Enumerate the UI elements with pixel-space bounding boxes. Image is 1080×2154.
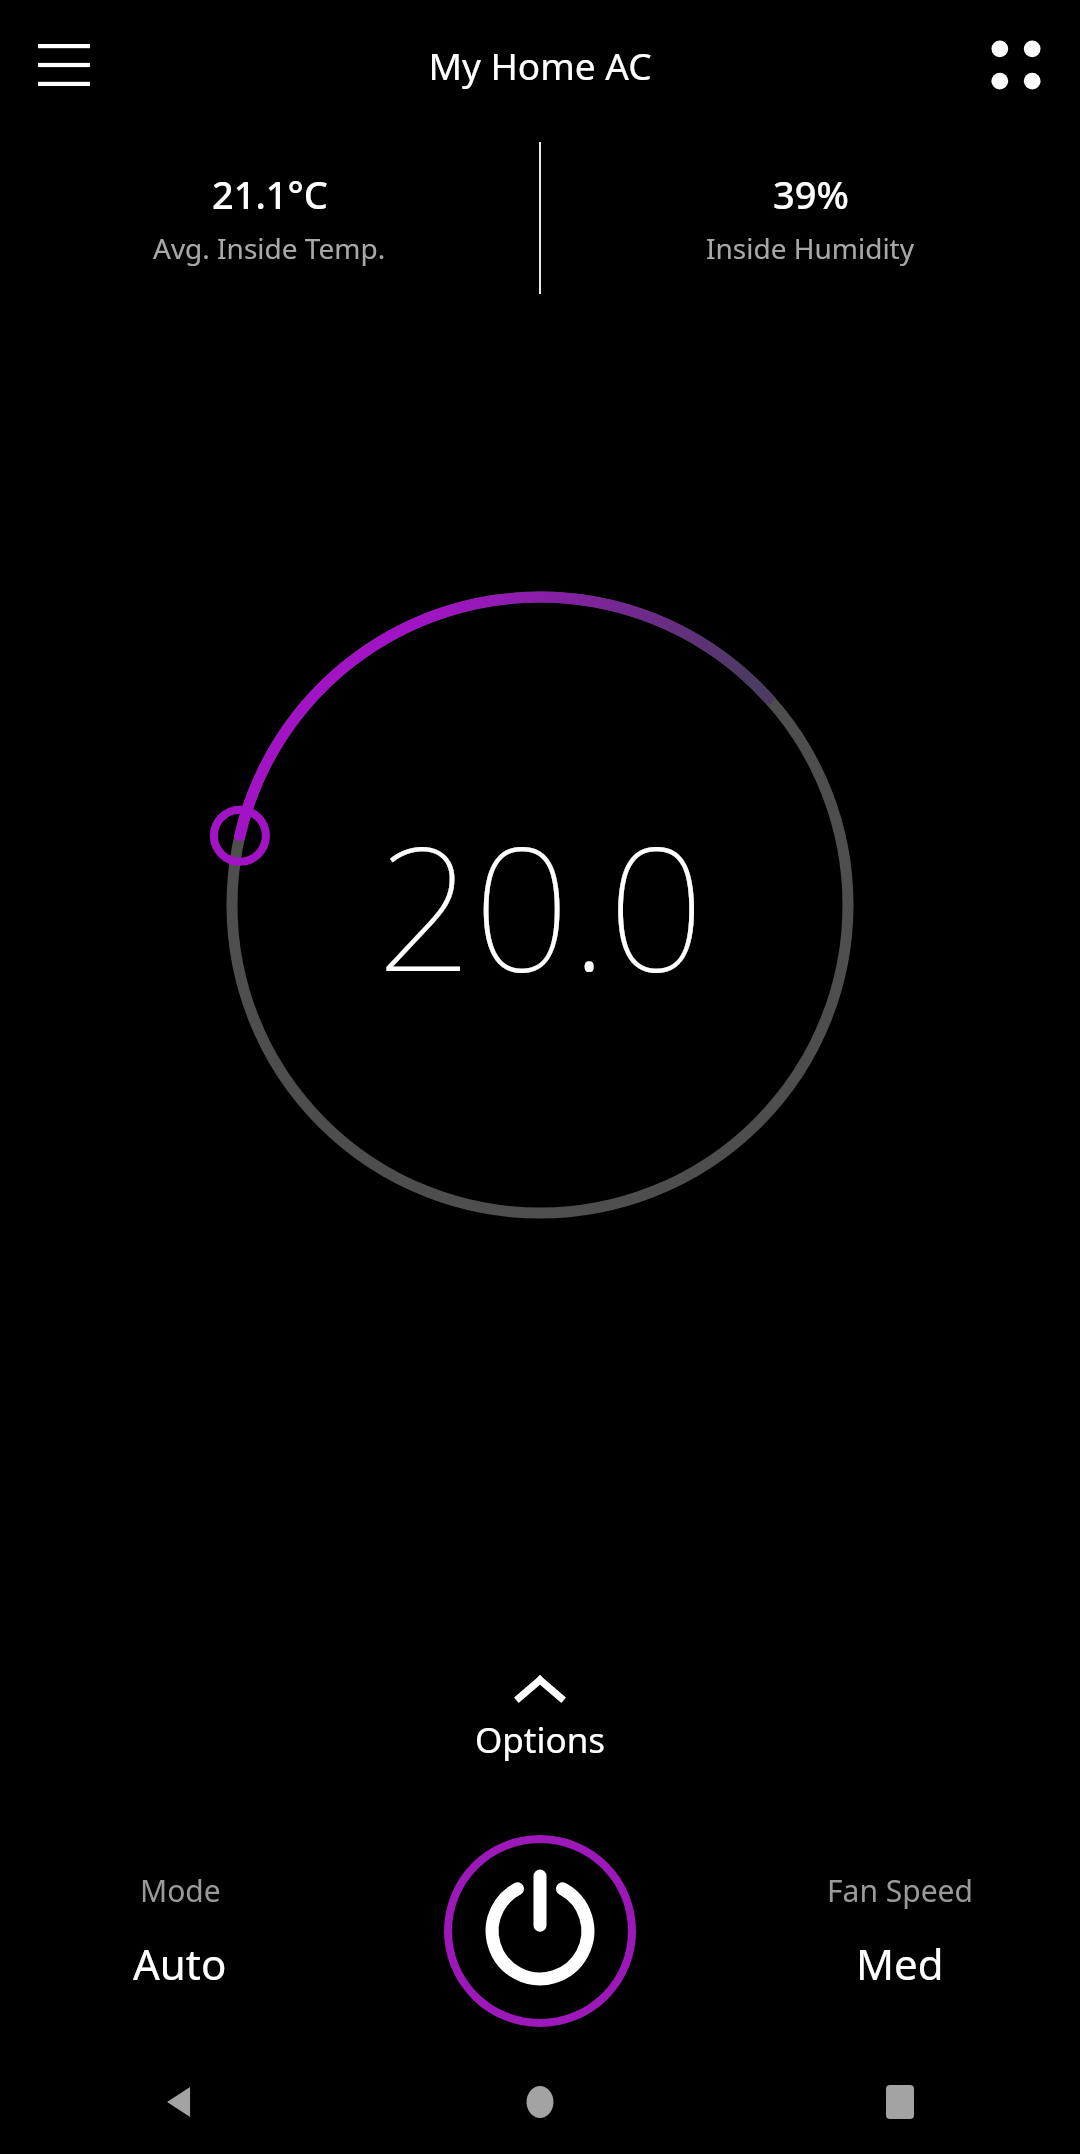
staticText: Med [856,1935,944,1992]
staticText: My Home AC [428,40,652,90]
staticText: Fan Speed [827,1870,973,1911]
staticText: Inside Humidity [706,229,915,267]
staticText: Avg. Inside Temp. [153,229,386,267]
button[interactable]: 21.1°C [0,130,539,305]
button[interactable]: Back [0,2050,360,2154]
button[interactable]: Menu [22,23,106,107]
staticText: 39% [773,168,849,220]
button[interactable]: Mode [0,1826,360,2036]
button[interactable]: Fan Speed [720,1826,1080,2036]
staticText: 21.1°C [212,168,328,220]
button[interactable]: Options [0,1676,1080,1764]
staticText: Options [475,1716,606,1764]
staticText: Auto [133,1935,227,1992]
button[interactable]: Home [360,2050,720,2154]
button[interactable]: Grid view [974,23,1058,107]
staticText: Mode [140,1870,221,1911]
button[interactable]: 39% [541,130,1080,305]
button[interactable]: Target temperature dial [210,575,870,1235]
button[interactable]: Power [442,1833,638,2029]
staticText: 20.0 [376,789,705,1021]
button[interactable]: Recents [720,2050,1080,2154]
